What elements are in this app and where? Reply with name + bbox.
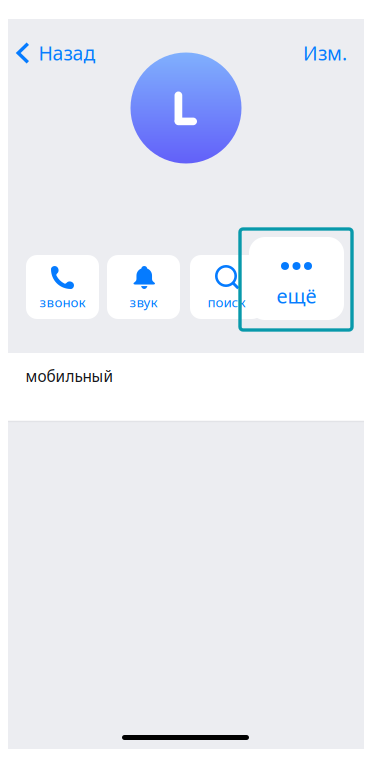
staticText: звук [129,293,157,311]
button[interactable]: ещё [249,237,344,320]
button[interactable]: Назад [11,32,100,74]
staticText: мобильный [25,366,113,386]
staticText: ещё [276,282,316,309]
button[interactable]: звонок [26,255,99,319]
staticText: поиск [207,293,245,311]
staticText: Изм. [303,40,347,66]
staticText: Назад [38,40,95,66]
button[interactable]: Изм. [297,32,353,74]
button[interactable]: поиск [190,255,263,319]
staticText: звонок [39,293,85,311]
button[interactable]: звук [107,255,180,319]
